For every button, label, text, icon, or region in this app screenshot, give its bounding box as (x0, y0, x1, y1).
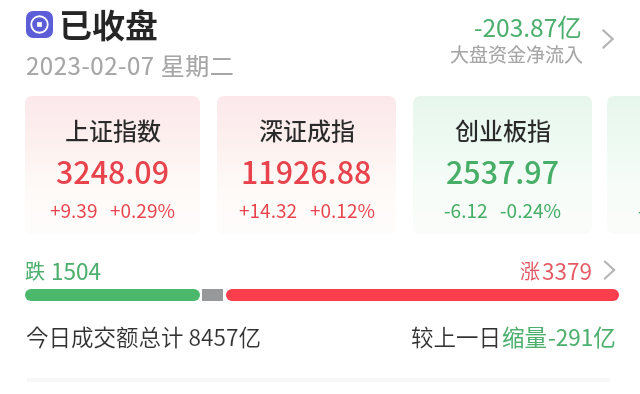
staticText: +14.32 (239, 196, 298, 224)
staticText: -291亿 (548, 320, 616, 353)
button[interactable]: 科创50 (607, 96, 640, 234)
staticText: -2.05 (638, 196, 640, 224)
staticText: 涨 (520, 256, 540, 282)
staticText: 3379 (542, 254, 592, 280)
button[interactable]: More stats (599, 259, 620, 281)
staticText: 大盘资金净流入 (450, 40, 584, 68)
staticText: 缩量 (502, 320, 548, 353)
button[interactable]: -203.87亿 (440, 4, 600, 66)
staticText: +9.39 (50, 196, 98, 224)
staticText: 创业板指 (455, 112, 551, 147)
staticText: +0.29% (110, 196, 175, 224)
staticText: 深证成指 (259, 112, 355, 147)
staticText: +0.12% (310, 196, 375, 224)
staticText: 今日成交额总计 8457亿 (26, 320, 261, 353)
staticText: -0.24% (500, 196, 562, 224)
staticText: 2023-02-07 星期二 (26, 47, 235, 82)
staticText: -203.87亿 (474, 9, 582, 44)
button[interactable]: 已收盘 (24, 0, 164, 43)
staticText: 3248.09 (56, 149, 169, 193)
button[interactable]: 创业板指 (413, 96, 592, 234)
staticText: 上证指数 (65, 112, 161, 147)
button[interactable]: 深证成指 (217, 96, 396, 234)
button[interactable]: 上证指数 (25, 96, 200, 234)
staticText: -6.12 (444, 196, 488, 224)
staticText: 2537.97 (446, 149, 559, 193)
staticText: 跌 (25, 256, 45, 282)
staticText: 较上一日 (411, 320, 502, 353)
staticText: 已收盘 (59, 0, 158, 44)
button[interactable]: 跌 (25, 254, 105, 280)
button[interactable]: 涨 (520, 254, 600, 280)
staticText: 1504 (51, 254, 101, 280)
staticText: 11926.88 (241, 149, 372, 193)
button[interactable]: More (598, 26, 618, 52)
